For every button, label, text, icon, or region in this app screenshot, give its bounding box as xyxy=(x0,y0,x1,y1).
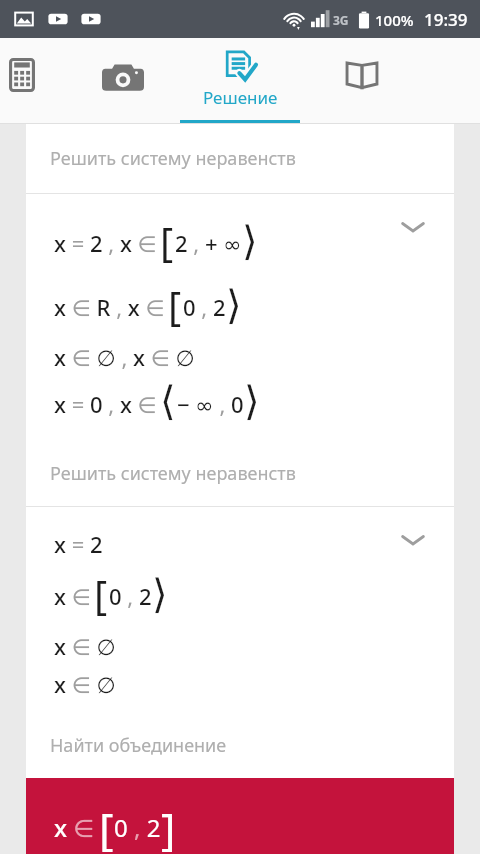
staticText: [ xyxy=(99,798,114,852)
staticText: Найти объединение xyxy=(50,733,227,758)
staticText: x ∈ ∅ xyxy=(54,631,116,661)
staticText: 3G xyxy=(333,12,349,28)
button[interactable]: Найти объединение xyxy=(26,713,454,778)
staticText: ⟩ xyxy=(226,282,242,329)
staticText: ⟩ xyxy=(242,218,258,265)
staticText: Решение xyxy=(203,86,278,109)
staticText: ⟨ xyxy=(160,378,176,425)
button[interactable]: Решение xyxy=(180,38,300,124)
staticText: 0 , 2 xyxy=(114,811,161,844)
staticText: 100% xyxy=(375,10,414,30)
button[interactable]: Решить систему неравенств xyxy=(26,124,454,193)
staticText: x ∈ xyxy=(54,581,91,611)
staticText: ⟩ xyxy=(244,378,260,425)
staticText: x = 2 , x ∈ xyxy=(54,228,157,258)
staticText: x ∈ ∅ xyxy=(54,669,116,699)
button[interactable]: Calculator xyxy=(0,38,62,124)
staticText: 19:39 xyxy=(424,8,468,31)
staticText: x ∈ ∅ , x ∈ ∅ xyxy=(54,342,195,372)
staticText: x ∈ xyxy=(54,811,95,844)
button[interactable]: Book xyxy=(322,38,402,124)
button[interactable]: Camera xyxy=(83,38,163,124)
staticText: [ xyxy=(94,567,108,621)
staticText: x ∈ R , x ∈ xyxy=(54,292,165,322)
staticText: Решить систему неравенств xyxy=(50,146,296,171)
staticText: 0 , 2 xyxy=(183,292,226,322)
staticText: x = 2 xyxy=(54,529,103,559)
staticText: x = 0 , x ∈ xyxy=(54,389,157,419)
staticText: ] xyxy=(161,798,176,852)
staticText: ⟩ xyxy=(152,571,168,618)
staticText: 2 , + ∞ xyxy=(175,228,242,258)
staticText: − ∞ , 0 xyxy=(177,389,244,419)
staticText: 0 , 2 xyxy=(109,581,152,611)
staticText: [ xyxy=(160,214,174,268)
staticText: Решить систему неравенств xyxy=(50,461,296,486)
button[interactable]: Решить систему неравенств xyxy=(26,441,454,506)
staticText: [ xyxy=(168,278,182,332)
